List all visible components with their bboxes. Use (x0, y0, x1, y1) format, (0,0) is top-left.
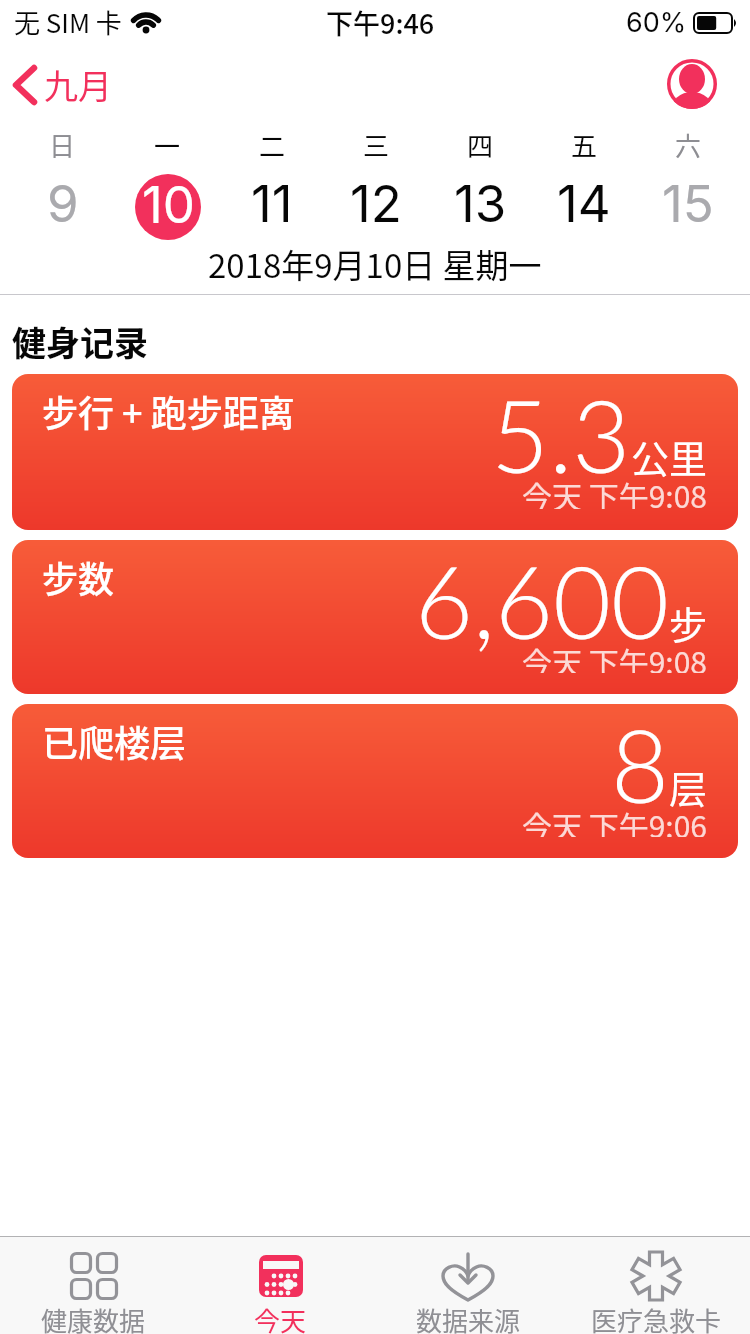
button[interactable]: 15 (636, 174, 740, 240)
staticText: 2018年9月10日 星期一 (208, 240, 542, 288)
staticText: 医疗急救卡 (591, 1301, 722, 1334)
staticText: 层 (669, 759, 708, 814)
staticText: 10 (142, 174, 195, 236)
staticText: 今天 下午9:08 (522, 473, 708, 509)
button[interactable] (667, 59, 717, 109)
staticText: 今天 下午9:06 (522, 803, 708, 837)
staticText: 三 (363, 126, 390, 164)
staticText: 今天 下午9:08 (522, 639, 708, 673)
staticText: 11 (251, 173, 293, 235)
staticText: 九月 (44, 60, 112, 109)
button[interactable]: 10 (115, 174, 220, 240)
button[interactable]: 12 (324, 174, 428, 240)
staticText: 四 (467, 126, 494, 164)
staticText: 60% (626, 6, 687, 39)
staticText: 12 (350, 173, 402, 235)
button[interactable]: 医疗急救卡 (562, 1237, 750, 1334)
staticText: 一 (154, 126, 181, 164)
button[interactable]: 步行 + 跑步距离 (12, 374, 738, 530)
button[interactable]: 13 (428, 174, 532, 240)
staticText: 六 (675, 126, 702, 164)
staticText: 公里 (631, 429, 708, 484)
staticText: 9 (47, 173, 79, 235)
staticText: 五 (571, 126, 598, 164)
button[interactable]: 健康数据 (0, 1237, 187, 1334)
button[interactable]: 11 (220, 174, 324, 240)
button[interactable]: 10 (135, 174, 201, 240)
staticText: 15 (662, 173, 714, 235)
staticText: 5.3 (491, 374, 631, 494)
staticText: 无 SIM 卡 (14, 3, 122, 41)
staticText: 6,600 (415, 540, 669, 660)
staticText: 健身记录 (12, 317, 148, 366)
button[interactable]: 步数 (12, 540, 738, 694)
staticText: 数据来源 (416, 1301, 521, 1334)
button[interactable]: 九月 (12, 60, 112, 109)
button[interactable]: 9 (10, 174, 115, 240)
button[interactable]: 已爬楼层 (12, 704, 738, 858)
staticText: 日 (49, 126, 76, 164)
staticText: 步数 (42, 551, 115, 603)
staticText: 8 (611, 704, 669, 824)
staticText: 二 (259, 126, 286, 164)
staticText: 步行 + 跑步距离 (42, 385, 295, 437)
staticText: 健康数据 (41, 1301, 146, 1334)
staticText: 下午9:46 (326, 3, 435, 42)
staticText: 步 (669, 595, 708, 650)
button[interactable]: 今天 (187, 1237, 374, 1334)
button[interactable]: 数据来源 (374, 1237, 562, 1334)
button[interactable]: 14 (532, 174, 636, 240)
staticText: 今天 (254, 1301, 307, 1334)
staticText: 14 (557, 173, 611, 235)
staticText: 13 (454, 173, 507, 235)
staticText: 已爬楼层 (42, 715, 187, 767)
